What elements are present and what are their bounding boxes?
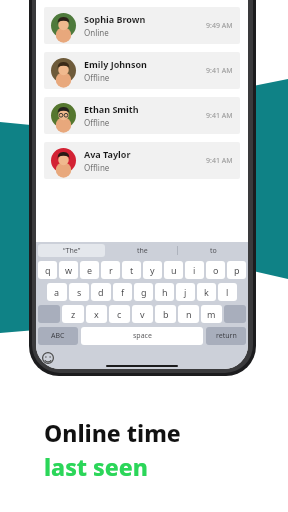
staticText: t bbox=[130, 264, 134, 276]
button[interactable]: i bbox=[185, 261, 204, 279]
staticText: v bbox=[140, 308, 145, 320]
staticText: Offline bbox=[84, 72, 110, 83]
button[interactable]: o bbox=[206, 261, 225, 279]
button[interactable]: f bbox=[113, 283, 132, 301]
button[interactable]: s bbox=[69, 283, 89, 301]
staticText: y bbox=[150, 264, 155, 276]
staticText: c bbox=[117, 308, 122, 320]
button[interactable]: h bbox=[155, 283, 174, 301]
button[interactable]: r bbox=[101, 261, 120, 279]
button[interactable]: y bbox=[143, 261, 162, 279]
staticText: space bbox=[133, 331, 152, 341]
staticText: Ava Taylor bbox=[84, 148, 131, 160]
staticText: return bbox=[216, 331, 237, 341]
staticText: e bbox=[87, 264, 93, 276]
button[interactable]: Backspace bbox=[224, 305, 246, 323]
staticText: a bbox=[54, 286, 60, 298]
staticText: 9:41 AM bbox=[206, 111, 233, 121]
button[interactable]: l bbox=[218, 283, 237, 301]
staticText: 9:41 AM bbox=[206, 156, 233, 166]
staticText: the bbox=[137, 246, 148, 256]
staticText: w bbox=[65, 264, 73, 276]
button[interactable]: t bbox=[122, 261, 141, 279]
staticText: i bbox=[193, 264, 196, 276]
staticText: q bbox=[45, 264, 51, 276]
staticText: b bbox=[163, 308, 169, 320]
button[interactable]: z bbox=[62, 305, 84, 323]
button[interactable]: b bbox=[155, 305, 176, 323]
staticText: h bbox=[162, 286, 168, 298]
staticText: r bbox=[109, 264, 113, 276]
button[interactable]: e bbox=[80, 261, 99, 279]
staticText: o bbox=[213, 264, 219, 276]
staticText: k bbox=[204, 286, 209, 298]
staticText: 9:49 AM bbox=[206, 21, 233, 31]
staticText: Sophia Brown bbox=[84, 13, 146, 25]
staticText: last seen bbox=[44, 451, 148, 482]
button[interactable]: Shift bbox=[38, 305, 60, 323]
button[interactable]: m bbox=[201, 305, 222, 323]
button[interactable]: p bbox=[227, 261, 246, 279]
button[interactable]: Emoji keyboard bbox=[42, 352, 54, 364]
staticText: Emily Johnson bbox=[84, 58, 147, 70]
button[interactable]: “The” bbox=[38, 244, 105, 257]
staticText: s bbox=[77, 286, 82, 298]
button[interactable]: a bbox=[47, 283, 67, 301]
staticText: 9:41 AM bbox=[206, 66, 233, 76]
button[interactable]: c bbox=[109, 305, 130, 323]
staticText: “The” bbox=[63, 246, 81, 256]
button[interactable]: Ava Taylor bbox=[44, 142, 240, 179]
button[interactable]: k bbox=[197, 283, 216, 301]
staticText: ABC bbox=[51, 331, 65, 341]
staticText: to bbox=[210, 246, 217, 256]
staticText: Offline bbox=[84, 162, 110, 173]
staticText: z bbox=[71, 308, 76, 320]
button[interactable]: u bbox=[164, 261, 183, 279]
button[interactable]: d bbox=[91, 283, 111, 301]
button[interactable]: g bbox=[134, 283, 153, 301]
staticText: d bbox=[98, 286, 104, 298]
staticText: Online time bbox=[44, 417, 181, 448]
staticText: l bbox=[226, 286, 229, 298]
button[interactable]: j bbox=[176, 283, 195, 301]
staticText: Ethan Smith bbox=[84, 103, 139, 115]
staticText: Offline bbox=[84, 117, 110, 128]
staticText: n bbox=[186, 308, 192, 320]
staticText: Online bbox=[84, 27, 109, 38]
staticText: m bbox=[207, 308, 216, 320]
button[interactable]: w bbox=[59, 261, 78, 279]
button[interactable]: return bbox=[206, 327, 246, 345]
button[interactable]: Sophia Brown bbox=[44, 7, 240, 44]
staticText: u bbox=[171, 264, 177, 276]
button[interactable]: Ethan Smith bbox=[44, 97, 240, 134]
button[interactable]: space bbox=[81, 327, 203, 345]
button[interactable]: n bbox=[178, 305, 199, 323]
button[interactable]: x bbox=[86, 305, 107, 323]
staticText: j bbox=[184, 286, 187, 298]
staticText: x bbox=[94, 308, 99, 320]
staticText: f bbox=[121, 286, 125, 298]
button[interactable]: the bbox=[107, 242, 177, 259]
button[interactable]: ABC bbox=[38, 327, 78, 345]
button[interactable]: to bbox=[178, 242, 248, 259]
staticText: p bbox=[234, 264, 240, 276]
button[interactable]: v bbox=[132, 305, 153, 323]
button[interactable]: q bbox=[38, 261, 57, 279]
staticText: g bbox=[141, 286, 147, 298]
button[interactable]: Emily Johnson bbox=[44, 52, 240, 89]
